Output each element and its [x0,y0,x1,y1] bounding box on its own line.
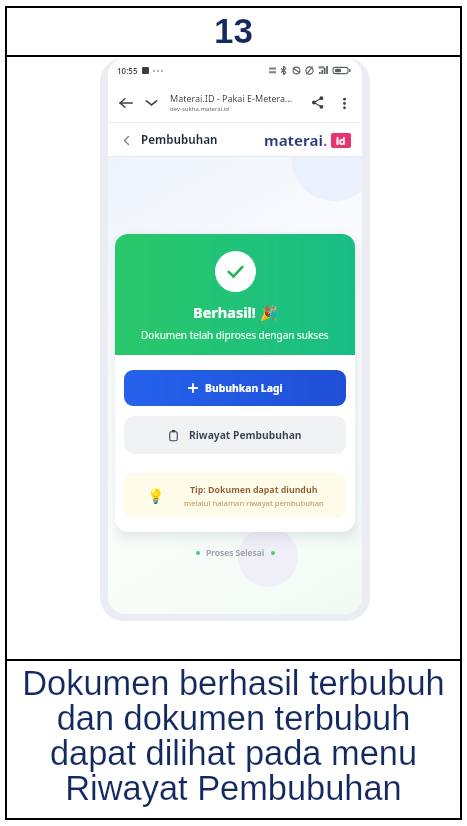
staticText: . [323,130,328,150]
staticText: 💡 [147,488,165,504]
staticText: Riwayat Pembubuhan [189,428,302,442]
staticText: Bubuhkan Lagi [205,381,283,395]
button[interactable]: More options [335,94,353,112]
button[interactable]: Riwayat Pembubuhan [124,416,346,454]
button[interactable]: Expand [142,93,161,112]
button[interactable]: Share [308,93,327,112]
staticText: Dokumen telah diproses dengan sukses [141,328,329,342]
button[interactable]: Back [118,132,134,148]
staticText: materai [264,130,323,150]
button[interactable]: Back [116,93,135,112]
staticText: Berhasil! 🎉 [193,302,278,322]
staticText: 13 [214,11,253,50]
staticText: melalui halaman riwayat pembubuhan [184,498,324,508]
staticText: id [336,134,346,148]
staticText: Materai.ID - Pakai E-Metera… [170,92,293,104]
staticText: Pembubuhan [141,132,218,148]
staticText: dev-sukha.materai.id [170,105,230,113]
staticText: Dokumen berhasil terbubuh dan dokumen te… [5,664,462,807]
button[interactable]: Bubuhkan Lagi [124,370,346,406]
staticText: Tip: Dokumen dapat diunduh [190,484,318,496]
staticText: Proses Selesai [206,547,265,559]
staticText: 10:55 [117,65,138,76]
